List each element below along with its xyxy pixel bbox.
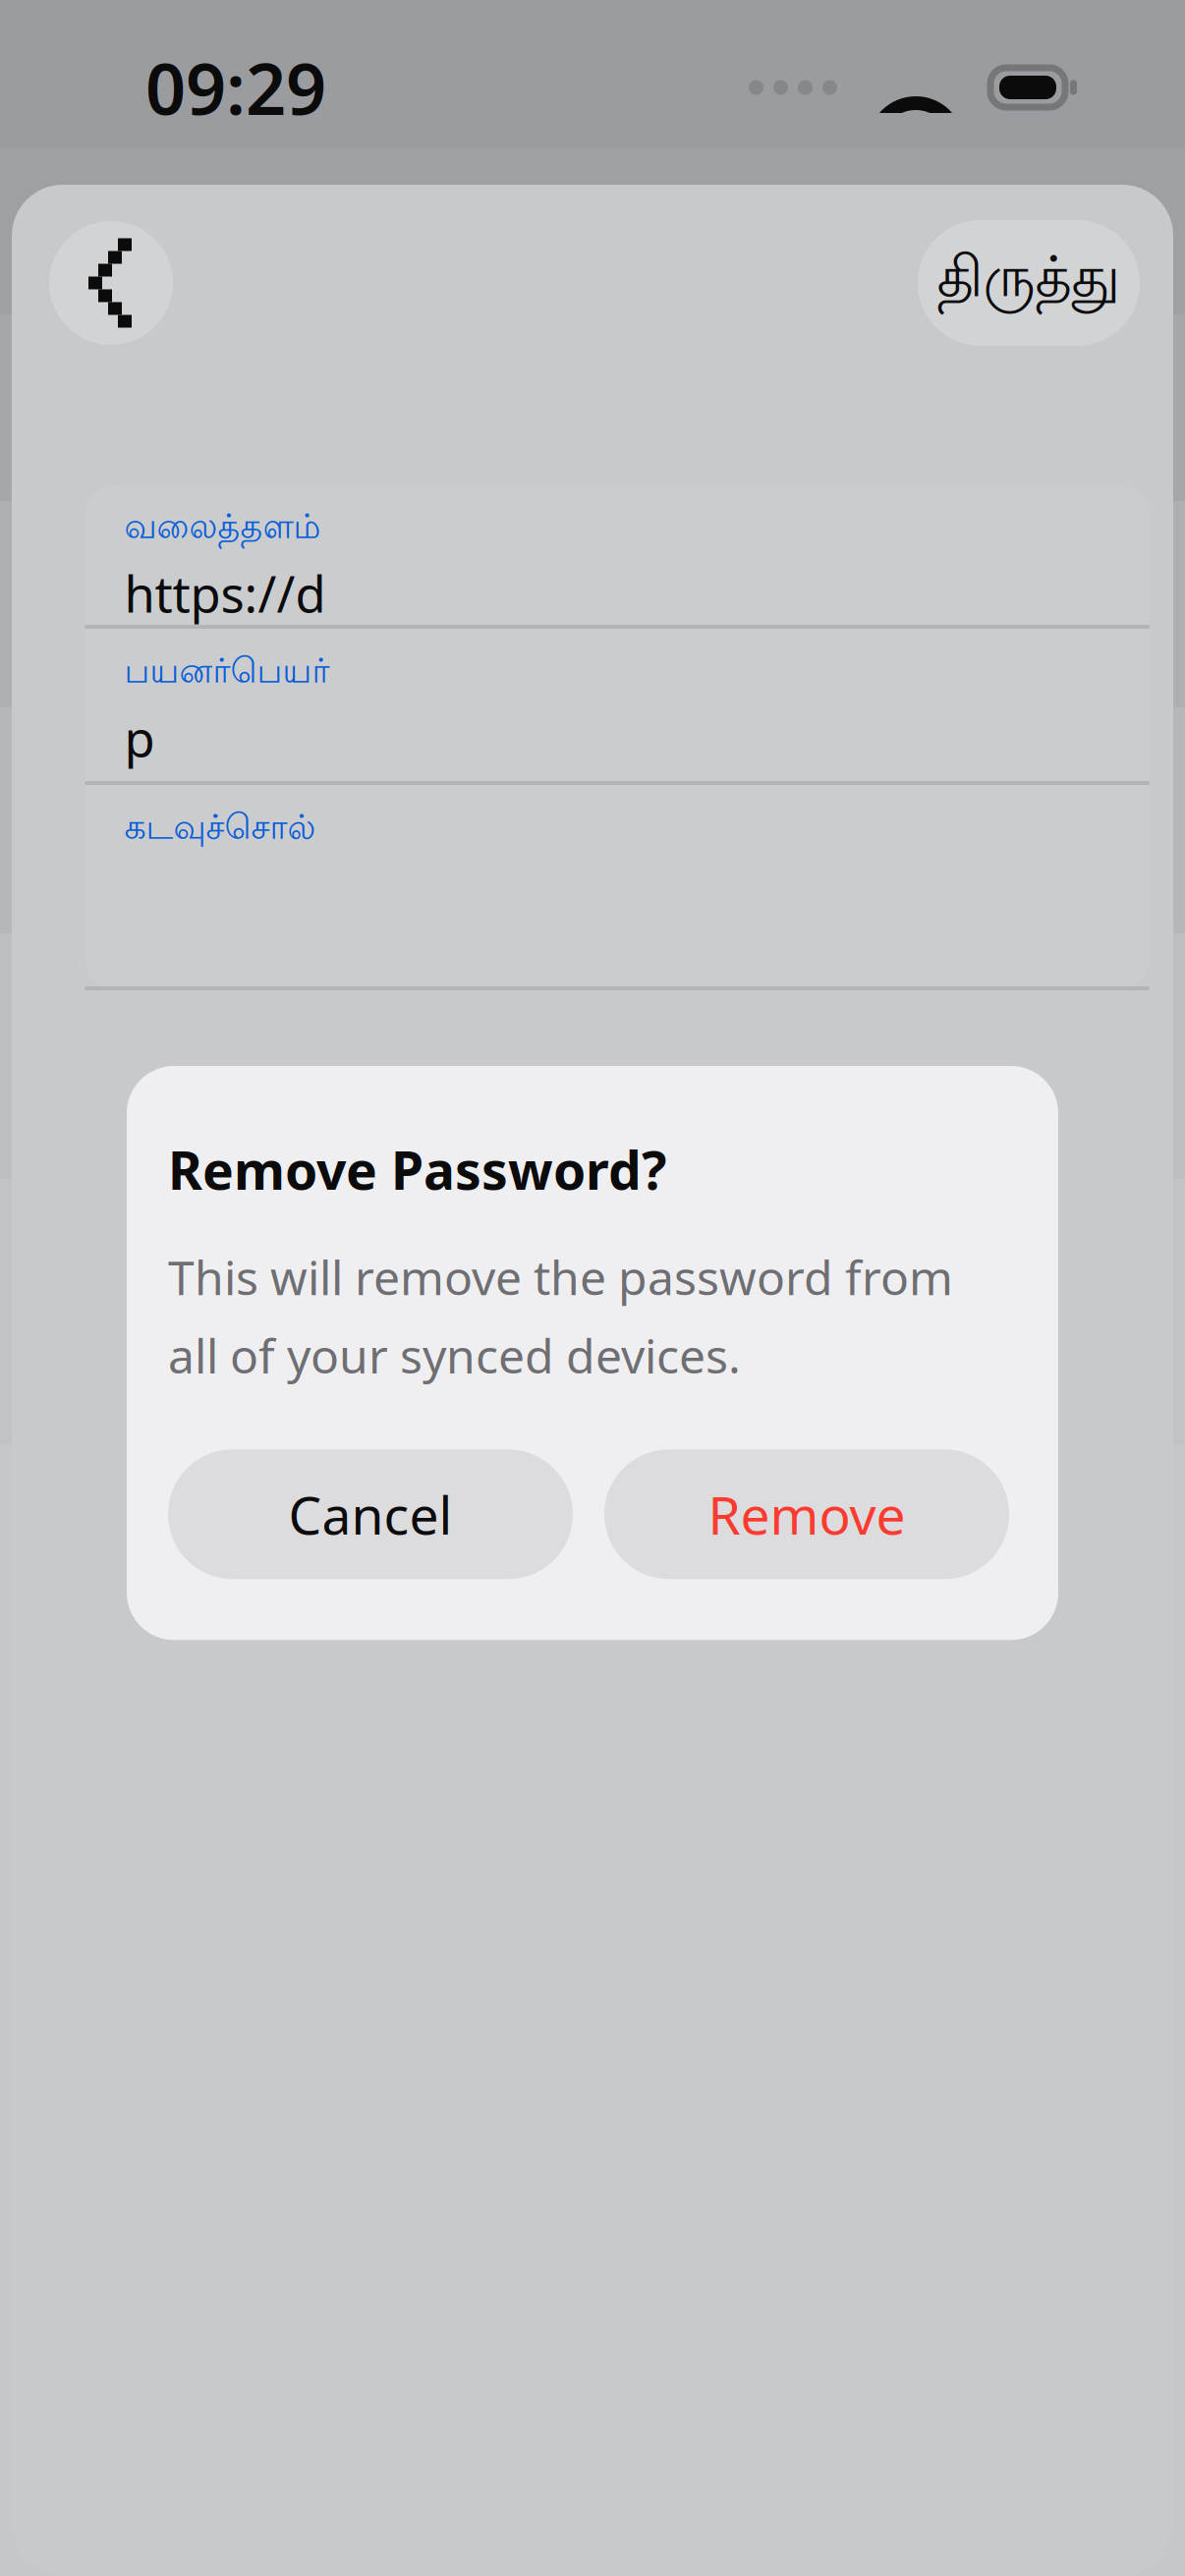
button[interactable]: Back <box>49 221 173 345</box>
button[interactable]: வலைத்தளம் <box>85 484 1149 629</box>
staticText: Remove <box>708 1479 905 1549</box>
staticText: https://d <box>124 560 326 626</box>
staticText: Cancel <box>288 1479 452 1549</box>
button[interactable]: Cancel <box>168 1449 573 1579</box>
staticText: 09:29 <box>145 40 326 134</box>
staticText: p <box>124 705 155 771</box>
staticText: வலைத்தளம் <box>124 510 321 550</box>
button[interactable]: Remove <box>604 1449 1009 1579</box>
staticText: பயனர்பெயர் <box>124 654 330 695</box>
staticText: all of your synced devices. <box>168 1324 741 1387</box>
staticText: கடவுச்சொல் <box>124 811 316 851</box>
button[interactable]: திருத்து <box>918 220 1140 346</box>
staticText: திருத்து <box>937 250 1121 316</box>
button[interactable]: கடவுச்சொல் <box>85 785 1149 990</box>
staticText: This will remove the password from <box>168 1246 953 1308</box>
staticText: Remove Password? <box>168 1135 666 1204</box>
button[interactable]: பயனர்பெயர் <box>85 629 1149 785</box>
